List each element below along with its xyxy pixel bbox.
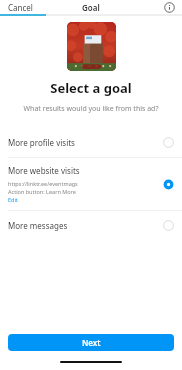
button[interactable]: More website visits: [0, 158, 182, 210]
staticText: More profile visits: [8, 137, 163, 148]
staticText: Cancel: [8, 2, 33, 12]
staticText: Goal: [82, 2, 100, 13]
staticText: Edit: [8, 196, 18, 203]
button[interactable]: Next: [8, 334, 174, 351]
staticText: Select a goal: [0, 79, 182, 97]
staticText: Action button: Learn More: [8, 188, 76, 195]
button[interactable]: Cancel: [6, 0, 35, 14]
staticText: More messages: [8, 220, 163, 231]
button[interactable]: Info: [164, 2, 175, 13]
staticText: What results would you like from this ad…: [0, 104, 182, 114]
staticText: https://linktr.ee/eventmags: [8, 180, 78, 187]
button[interactable]: More messages: [0, 211, 182, 240]
button[interactable]: Edit: [8, 196, 18, 203]
staticText: More website visits: [8, 165, 80, 176]
button[interactable]: Ad preview: [67, 22, 116, 71]
button[interactable]: More profile visits: [0, 128, 182, 157]
staticText: Next: [82, 337, 101, 348]
